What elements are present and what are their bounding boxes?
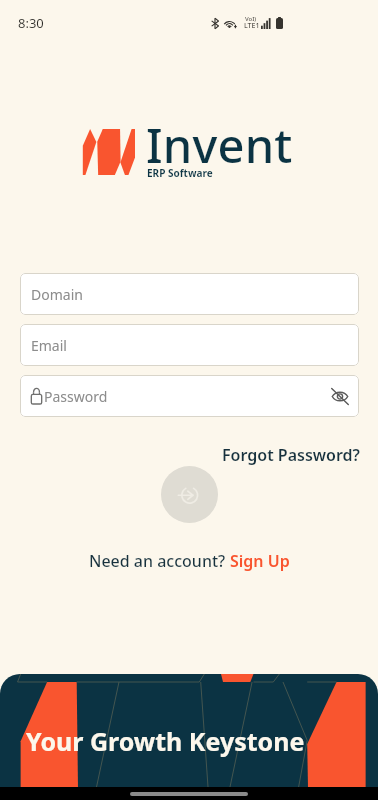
staticText: Domain [31,285,83,304]
staticText: Need an account? [89,550,230,572]
staticText: 8:30 [18,14,44,32]
button[interactable]: Sign Up [230,550,290,572]
staticText: Invent [146,113,293,177]
staticText: VoI) [245,15,257,23]
staticText: Your Growth Keystone [26,724,305,758]
staticText: LTE1 [244,21,260,31]
button[interactable]: Domain [20,273,359,315]
button[interactable]: Show password [329,385,351,407]
staticText: Sign Up [230,550,290,572]
staticText: Forgot Password? [222,444,360,466]
staticText: ERP Software [147,166,213,180]
button[interactable]: Email [20,324,359,366]
staticText: Password [44,387,108,406]
staticText: Email [31,336,67,355]
button[interactable]: Log in [161,466,218,523]
button[interactable]: Forgot Password? [222,441,360,469]
button[interactable]: Password [20,375,359,417]
